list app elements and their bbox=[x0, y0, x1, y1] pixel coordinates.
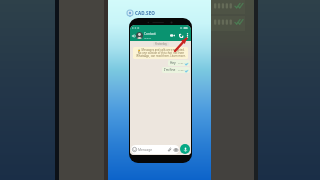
staticText: 11:02 bbox=[178, 69, 184, 72]
staticText: Hey bbox=[170, 61, 176, 65]
button[interactable]: Voice call bbox=[177, 32, 184, 39]
staticText: Yesterday bbox=[155, 42, 167, 46]
button[interactable]: Video call bbox=[169, 32, 176, 39]
staticText: Contact bbox=[144, 32, 156, 36]
button[interactable]: Back bbox=[131, 33, 136, 38]
staticText: I'm fine bbox=[164, 68, 176, 72]
staticText: Message bbox=[138, 147, 153, 152]
staticText: CAD.SEO bbox=[135, 10, 156, 16]
button[interactable]: Record voice message bbox=[180, 144, 190, 154]
button[interactable]: More options bbox=[185, 33, 190, 38]
button[interactable]: Message bbox=[131, 145, 179, 154]
staticText: online bbox=[144, 36, 151, 39]
staticText: 11:01 bbox=[178, 62, 184, 65]
staticText: 🔒 Messages and calls are encrypted. No o… bbox=[136, 48, 186, 58]
